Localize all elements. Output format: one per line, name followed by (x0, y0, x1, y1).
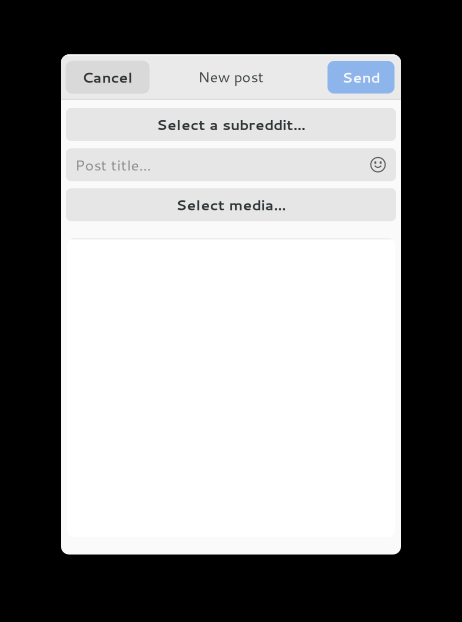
button[interactable]: Select a subreddit... (66, 108, 396, 141)
button[interactable]: Select media... (66, 188, 396, 221)
staticText: New post (198, 66, 264, 87)
button[interactable]: Insert emoji (370, 157, 386, 173)
staticText: Select media... (176, 195, 286, 215)
staticText: Select a subreddit... (156, 114, 305, 135)
staticText: Cancel (82, 67, 133, 87)
button[interactable]: Cancel (66, 61, 150, 94)
button[interactable]: Send (327, 61, 394, 93)
staticText: Send (342, 67, 380, 87)
staticText: Post title... (75, 154, 151, 175)
